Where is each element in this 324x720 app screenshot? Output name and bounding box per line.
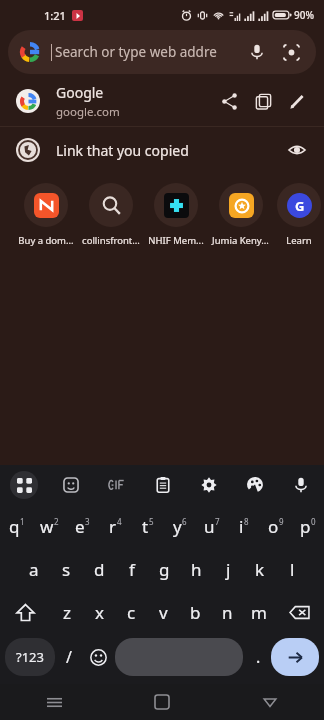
button[interactable]: ?123 [5,638,55,676]
button[interactable]: d [83,548,116,591]
button[interactable]: . [245,638,271,676]
staticText: Jumia Keny... [212,234,269,247]
staticText: Buy a dom... [18,234,74,247]
button[interactable]: h [180,548,212,591]
button[interactable]: Emoji [83,638,113,676]
button[interactable]: x [83,591,115,634]
button[interactable]: o [260,505,292,548]
button[interactable]: p [292,505,324,548]
staticText: Link that you copied [56,141,280,160]
button[interactable]: Shift [0,591,50,634]
staticText: 3 [85,516,90,527]
staticText: j [226,558,231,581]
staticText: y [173,515,182,538]
button[interactable]: Recents [0,684,108,720]
button[interactable]: / [55,638,83,676]
staticText: f [129,558,135,581]
staticText: c [127,601,136,624]
button[interactable]: Voice input [278,465,324,505]
button[interactable]: s [50,548,83,591]
button[interactable]: a [17,548,50,591]
button[interactable]: Edit query [280,84,314,118]
button[interactable]: Stickers [47,465,94,505]
staticText: p [300,515,311,538]
button[interactable]: Back [216,684,324,720]
button[interactable]: j [212,548,244,591]
button[interactable]: k [244,548,276,591]
staticText: 90% [294,8,314,22]
staticText: 6 [182,516,187,527]
button[interactable]: Themes [232,465,278,505]
staticText: v [159,601,168,624]
staticText: k [255,558,265,581]
staticText: o [268,515,279,538]
button[interactable]: Search or type web addre [8,30,316,74]
button[interactable]: Keyboard modes [0,465,47,505]
button[interactable]: b [179,591,211,634]
staticText: x [95,601,104,624]
staticText: 1:21 [44,8,66,23]
button[interactable]: l [276,548,308,591]
staticText: Search or type web addre [55,43,217,61]
button[interactable]: GIF [94,465,140,505]
button[interactable]: n [211,591,243,634]
button[interactable]: f [116,548,148,591]
button[interactable]: Enter [271,638,319,676]
button[interactable]: Reveal link [280,133,314,167]
button[interactable]: u [196,505,228,548]
staticText: . [256,646,261,668]
staticText: b [190,601,201,624]
button[interactable]: r [99,505,132,548]
button[interactable]: t [132,505,164,548]
button[interactable]: m [243,591,275,634]
button[interactable]: collinsfront... [79,183,142,247]
button[interactable]: Jumia Keny... [209,183,272,247]
staticText: 8 [244,516,249,527]
staticText: e [75,515,85,538]
staticText: 2 [54,516,59,527]
staticText: collinsfront... [82,234,140,247]
staticText: i [239,515,244,538]
button[interactable]: Space [115,638,243,676]
button[interactable]: Home [108,684,216,720]
button[interactable]: Voice search [244,39,270,65]
button[interactable]: NHIF Mem... [144,183,207,247]
staticText: 7 [215,516,220,527]
staticText: / [66,646,72,668]
staticText: t [142,515,149,538]
button[interactable]: Google [0,76,324,126]
button[interactable]: Open in new tab [246,84,280,118]
staticText: Learn [286,234,312,247]
staticText: G [295,197,305,215]
staticText: 4 [117,516,122,527]
button[interactable]: G [274,183,324,247]
button[interactable]: w [33,505,66,548]
staticText: 0 [311,516,316,527]
staticText: m [251,601,267,624]
button[interactable]: e [66,505,99,548]
staticText: h [191,558,202,581]
staticText: ?123 [16,648,44,666]
button[interactable]: Buy a dom... [14,183,77,247]
button[interactable]: z [50,591,83,634]
button[interactable]: c [115,591,147,634]
button[interactable]: i [228,505,260,548]
staticText: r [109,515,117,538]
staticText: l [290,558,295,581]
button[interactable]: Link that you copied [0,127,324,173]
button[interactable]: Share [212,84,246,118]
button[interactable]: v [147,591,179,634]
staticText: NHIF Mem... [148,234,204,247]
staticText: z [63,601,71,624]
button[interactable]: g [148,548,180,591]
button[interactable]: Backspace [275,591,324,634]
button[interactable]: y [164,505,196,548]
staticText: q [9,515,20,538]
staticText: Google [56,83,104,102]
staticText: n [222,601,233,624]
button[interactable]: q [0,505,33,548]
button[interactable]: Clipboard [140,465,186,505]
staticText: 5 [149,516,154,527]
button[interactable]: Settings [186,465,232,505]
button[interactable]: Google Lens [278,39,304,65]
